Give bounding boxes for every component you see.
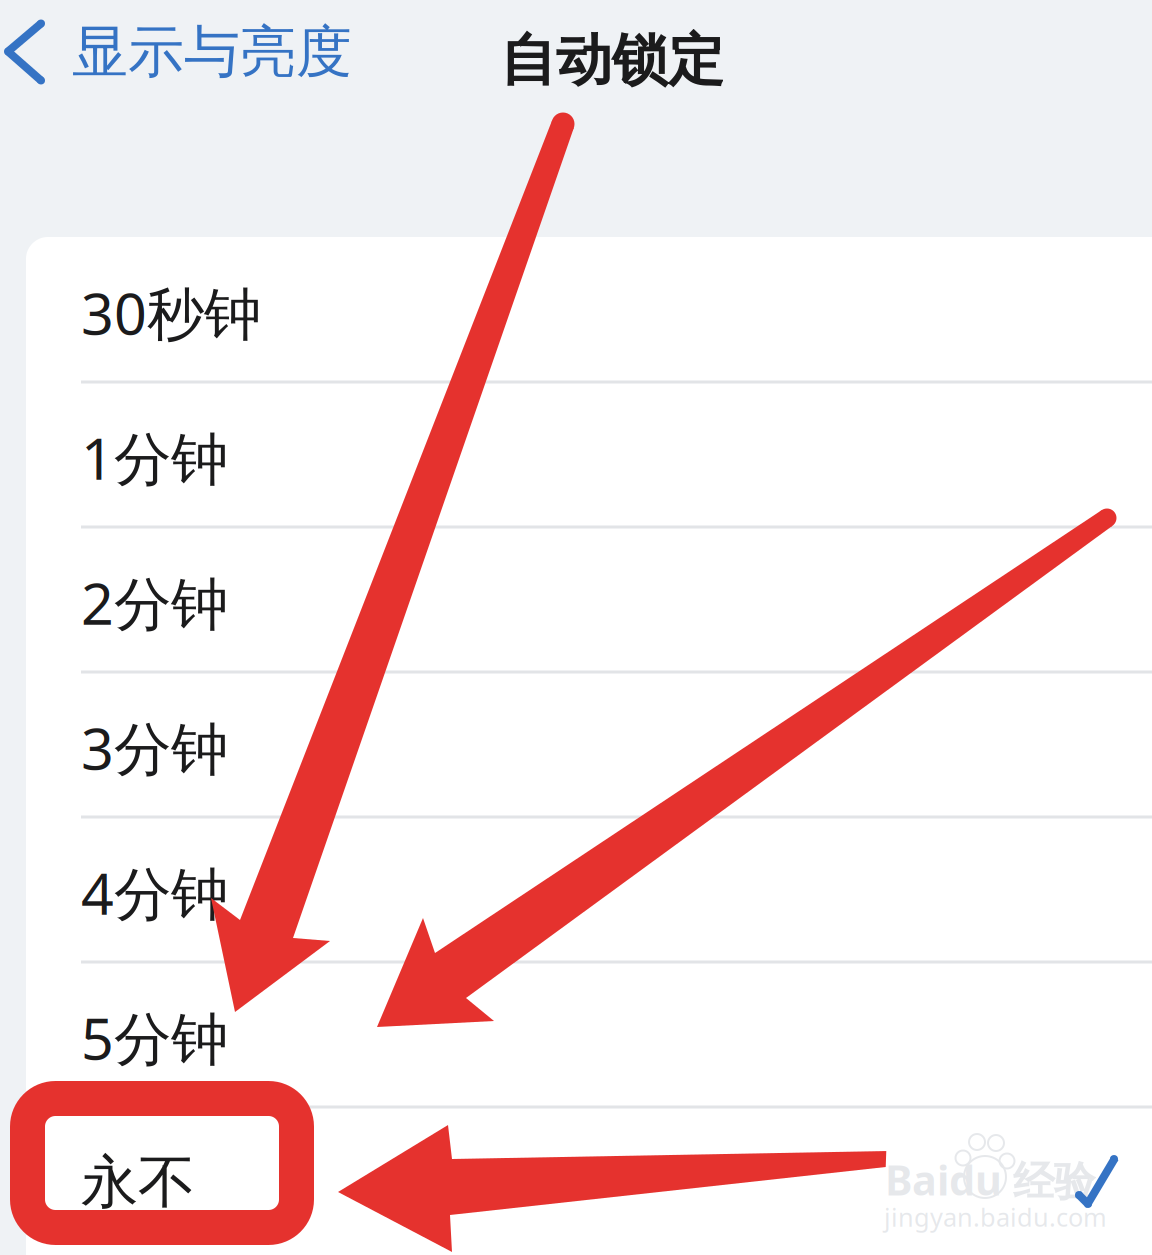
button[interactable]: 永不	[26, 1110, 1152, 1255]
button[interactable]: 1分钟	[26, 385, 1152, 530]
staticText: 2分钟	[81, 564, 228, 640]
button[interactable]: 30秒钟	[26, 240, 1152, 385]
staticText: Baidu 经验	[885, 1152, 1095, 1207]
button[interactable]: 4分钟	[26, 820, 1152, 965]
button[interactable]: 返回 显示与亮度	[0, 0, 352, 104]
staticText: 30秒钟	[81, 274, 261, 350]
button[interactable]: 5分钟	[26, 965, 1152, 1110]
staticText: 3分钟	[81, 709, 228, 785]
staticText: 显示与亮度	[72, 18, 352, 86]
staticText: 永不	[81, 1147, 195, 1218]
staticText: 4分钟	[81, 854, 228, 930]
staticText: 5分钟	[81, 999, 228, 1075]
button[interactable]: 3分钟	[26, 675, 1152, 820]
button[interactable]: 2分钟	[26, 530, 1152, 675]
staticText: 1分钟	[81, 419, 228, 495]
staticText: 自动锁定	[500, 26, 724, 95]
staticText: jingyan.baidu.com	[884, 1200, 1107, 1234]
